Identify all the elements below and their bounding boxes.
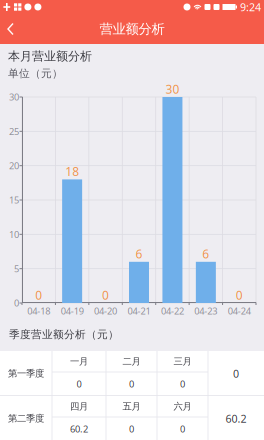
staticText: 营业额分析 (99, 21, 164, 37)
staticText: 04-22 (161, 305, 184, 317)
staticText: 0 (76, 378, 81, 390)
staticText: 一月 (70, 356, 88, 367)
staticText: 04-23 (194, 305, 217, 317)
staticText: 第一季度 (8, 368, 44, 379)
staticText: 0 (236, 287, 243, 303)
staticText: 10 (9, 228, 19, 240)
staticText: 0 (129, 423, 134, 435)
staticText: 第二季度 (8, 413, 44, 424)
staticText: 60.2 (70, 423, 88, 435)
staticText: 0 (129, 378, 134, 390)
staticText: 30 (9, 91, 19, 103)
staticText: 04-20 (94, 305, 117, 317)
staticText: 04-19 (61, 305, 84, 317)
staticText: 五月 (122, 401, 140, 412)
staticText: 三月 (173, 356, 191, 367)
staticText: 04-24 (228, 305, 251, 317)
staticText: 季度营业额分析（元） (9, 328, 119, 341)
staticText: 25 (9, 125, 19, 137)
staticText: 20 (9, 159, 19, 172)
staticText: 0 (102, 287, 109, 303)
staticText: 6 (202, 246, 209, 262)
staticText: 0 (14, 297, 19, 309)
staticText: 0 (233, 366, 239, 381)
button[interactable]: Back (0, 14, 30, 44)
staticText: 0 (180, 423, 185, 435)
staticText: 15 (9, 194, 19, 206)
staticText: 单位（元） (8, 67, 63, 80)
staticText: 5 (14, 262, 19, 275)
staticText: 04-21 (127, 305, 150, 317)
staticText: 18 (65, 163, 79, 179)
staticText: 四月 (70, 401, 88, 412)
staticText: 30 (165, 81, 179, 97)
staticText: 6 (135, 246, 142, 262)
staticText: 0 (35, 287, 42, 303)
staticText: 二月 (122, 356, 140, 367)
staticText: 9:24 (240, 0, 261, 14)
staticText: 六月 (173, 401, 191, 412)
staticText: 60.2 (225, 411, 246, 426)
staticText: 本月营业额分析 (8, 49, 92, 64)
staticText: 04-18 (27, 305, 50, 317)
staticText: 0 (180, 378, 185, 390)
